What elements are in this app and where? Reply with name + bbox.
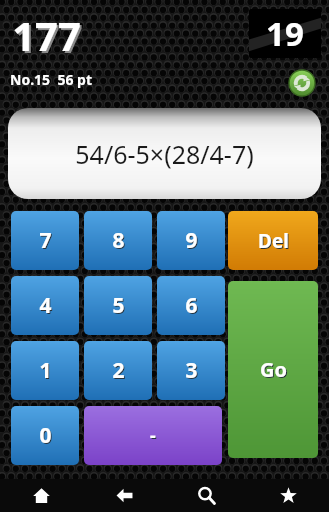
staticText: 9	[185, 226, 198, 255]
staticText: Go	[260, 356, 287, 383]
button[interactable]: 54/6-5×(28/4-7)	[8, 108, 321, 199]
staticText: 5	[113, 292, 126, 321]
button[interactable]: 1	[11, 341, 79, 400]
staticText: 2	[112, 356, 125, 385]
staticText: 4	[40, 292, 53, 321]
button[interactable]: Home	[0, 479, 83, 512]
button[interactable]: 7	[11, 211, 79, 270]
staticText: -	[151, 424, 157, 449]
button[interactable]: Refresh	[289, 70, 315, 96]
staticText: 1	[40, 357, 53, 386]
staticText: Go	[261, 357, 288, 384]
button[interactable]: 4	[11, 276, 79, 335]
staticText: -	[150, 423, 156, 448]
button[interactable]: 6	[157, 276, 225, 335]
staticText: 5	[112, 291, 125, 320]
staticText: 3	[185, 356, 198, 385]
staticText: 3	[186, 357, 199, 386]
button[interactable]: Favorites	[247, 479, 329, 512]
staticText: 2	[113, 357, 126, 386]
button[interactable]: 0	[11, 406, 79, 465]
staticText: 8	[113, 227, 126, 256]
staticText: 6	[186, 292, 199, 321]
staticText: 54/6-5×(28/4-7)	[75, 137, 254, 171]
staticText: 177	[14, 10, 83, 64]
button[interactable]: 3	[157, 341, 225, 400]
staticText: 19	[266, 11, 304, 56]
button[interactable]: Back	[83, 479, 165, 512]
button[interactable]: -	[84, 406, 222, 465]
staticText: 7	[40, 227, 53, 256]
staticText: 9	[186, 227, 199, 256]
button[interactable]: Search	[165, 479, 247, 512]
staticText: Del	[258, 228, 289, 254]
staticText: 4	[39, 291, 52, 320]
button[interactable]: 19	[249, 9, 321, 58]
staticText: 0	[40, 422, 53, 451]
button[interactable]: 9	[157, 211, 225, 270]
staticText: Del	[259, 229, 290, 255]
staticText: 1	[39, 356, 52, 385]
button[interactable]: Go	[228, 281, 318, 458]
staticText: 6	[185, 291, 198, 320]
staticText: 7	[39, 226, 52, 255]
button[interactable]: 2	[84, 341, 152, 400]
staticText: 0	[39, 421, 52, 450]
button[interactable]: 5	[84, 276, 152, 335]
button[interactable]: Del	[228, 211, 318, 270]
button[interactable]: 8	[84, 211, 152, 270]
staticText: 8	[112, 226, 125, 255]
staticText: No.15 56 pt	[10, 70, 92, 89]
staticText: 177	[12, 8, 81, 62]
